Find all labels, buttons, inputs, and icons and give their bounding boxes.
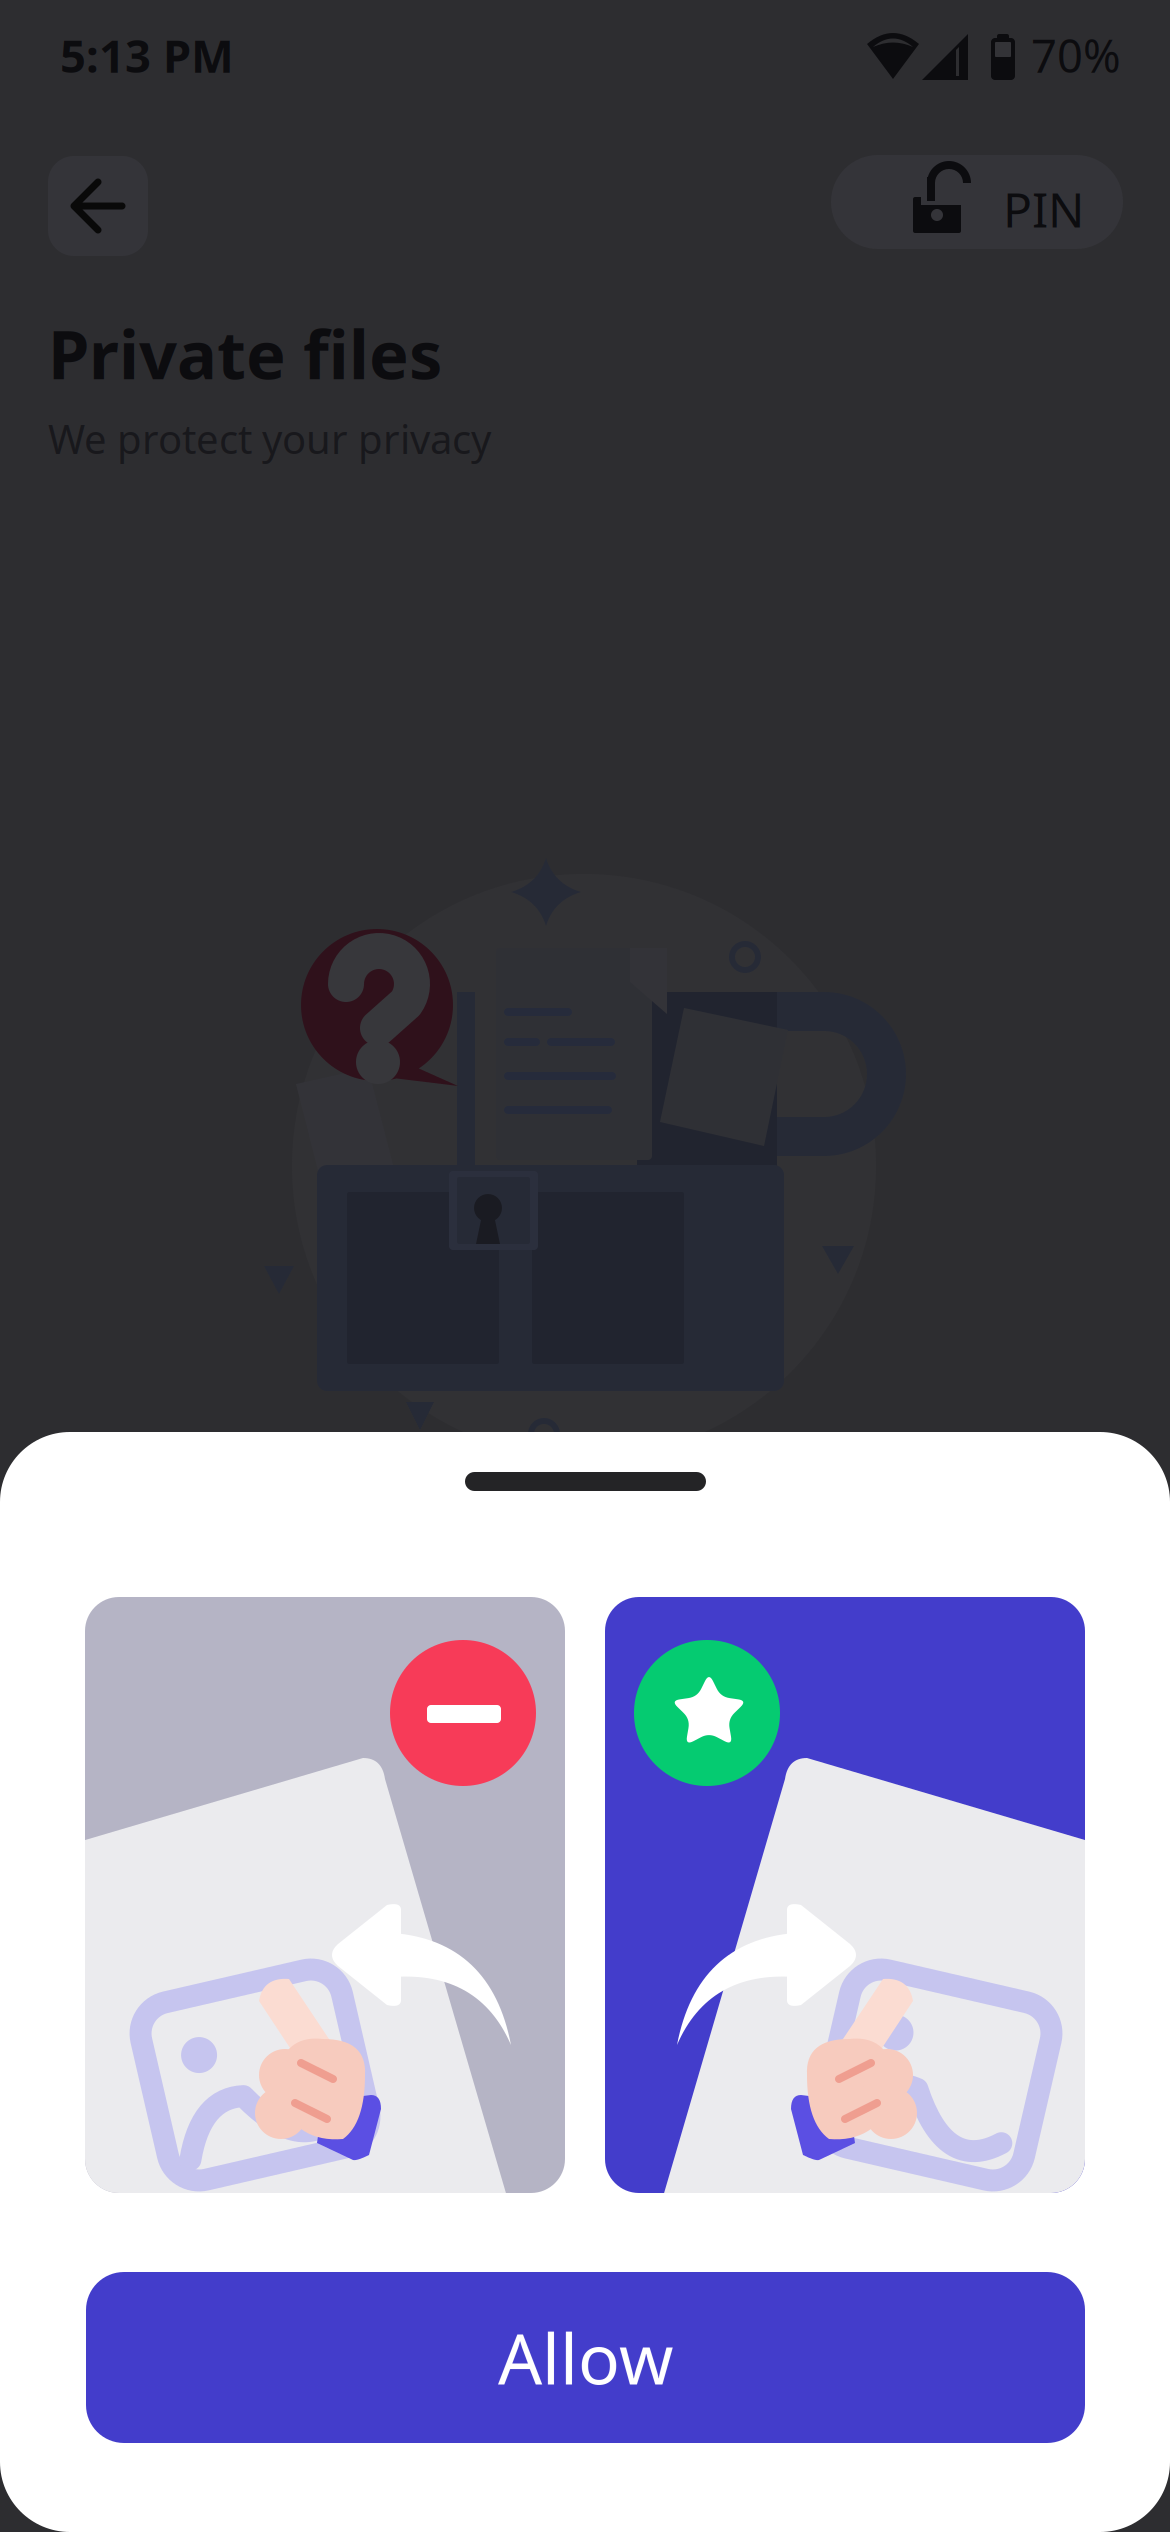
staticText: We protect your privacy	[48, 412, 491, 465]
staticText: PIN	[1003, 177, 1084, 241]
button[interactable]: Back	[48, 156, 148, 256]
button[interactable]: Allow	[86, 2272, 1085, 2443]
staticText: 70%	[1031, 25, 1121, 85]
staticText: 5:13 PM	[60, 25, 234, 85]
staticText: Private files	[48, 309, 442, 397]
staticText: Allow	[498, 2311, 673, 2404]
button[interactable]: PIN	[831, 155, 1123, 249]
